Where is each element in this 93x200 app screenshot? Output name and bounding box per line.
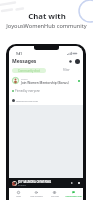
staticText: Join Women Mentorship (Bonus) <box>21 81 69 85</box>
staticText: Live sessions <box>30 195 43 198</box>
staticText: Filter <box>63 68 70 72</box>
staticText: Community chat <box>65 195 82 198</box>
button[interactable]: Profile <box>75 59 80 64</box>
staticText: JoyousWomenHub community <box>6 22 87 30</box>
button[interactable]: New message <box>68 59 73 64</box>
button[interactable]: Close <box>77 181 81 185</box>
button[interactable]: Community chat <box>12 68 46 73</box>
staticText: Sarah <box>21 77 28 80</box>
button[interactable]: Community chat <box>64 188 83 200</box>
staticText: 9:41 <box>16 52 22 56</box>
staticText: Pinned by everyone <box>15 89 40 93</box>
staticText: Feed <box>16 195 21 198</box>
staticText: Community chat <box>18 69 40 73</box>
staticText: Podcast <box>18 184 27 187</box>
staticText: Courses <box>51 195 59 198</box>
button[interactable]: Sarah <box>12 75 80 86</box>
button[interactable]: Play <box>70 181 74 185</box>
staticText: JOY SAUNDRA ONWENWA <box>18 180 51 184</box>
button[interactable]: Live sessions <box>27 188 45 200</box>
staticText: joinourcourse.com <box>16 99 39 102</box>
button[interactable]: Courses <box>45 188 64 200</box>
staticText: Messages <box>12 58 37 65</box>
button[interactable]: Feed <box>9 188 27 200</box>
staticText: Chat with <box>28 11 66 22</box>
